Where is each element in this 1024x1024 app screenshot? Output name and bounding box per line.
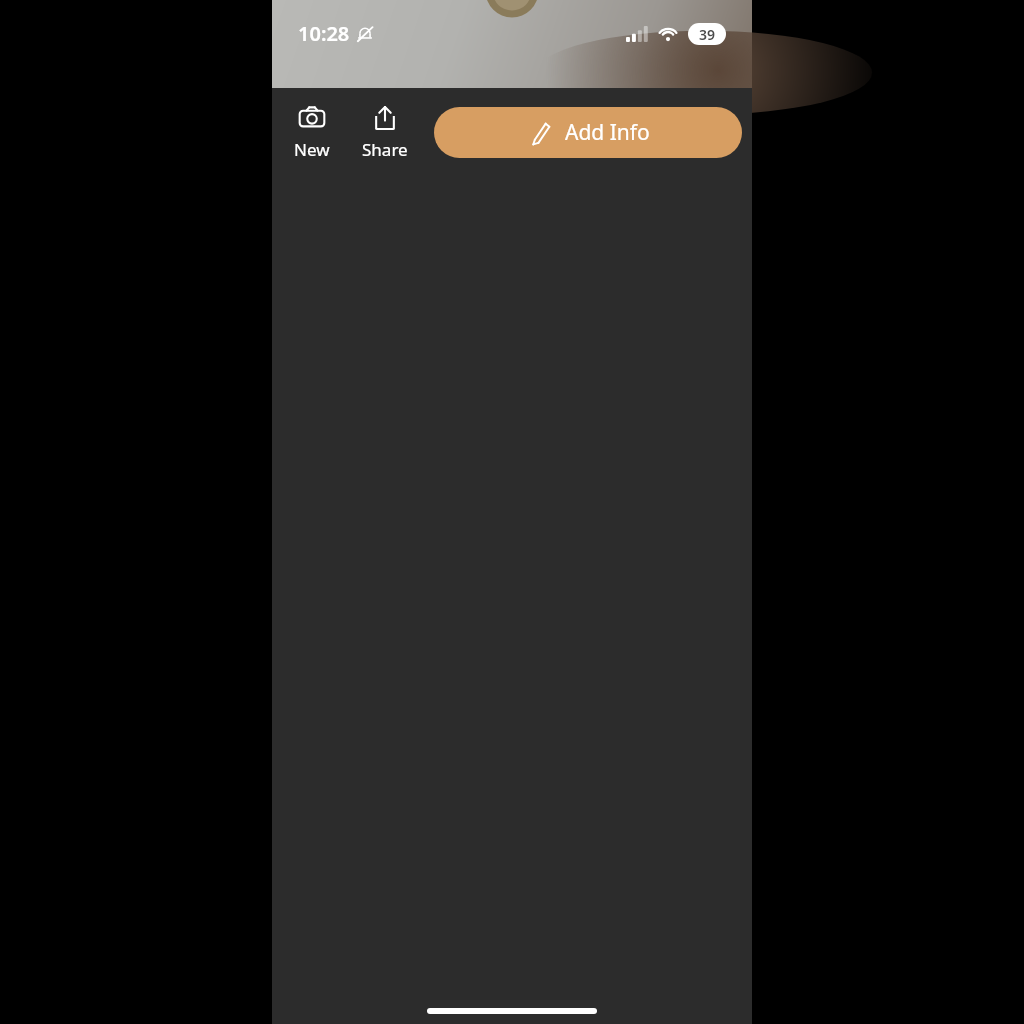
button[interactable]: New (286, 102, 338, 163)
staticText: New (294, 138, 330, 161)
other: Share (372, 105, 398, 131)
button[interactable]: Add Info (434, 107, 742, 158)
staticText: Share (362, 138, 408, 161)
staticText: 10:28 (298, 20, 350, 47)
staticText: 39 (699, 25, 716, 44)
staticText: Add Info (565, 118, 650, 147)
other: New (298, 104, 326, 132)
button[interactable]: Share (354, 102, 416, 163)
